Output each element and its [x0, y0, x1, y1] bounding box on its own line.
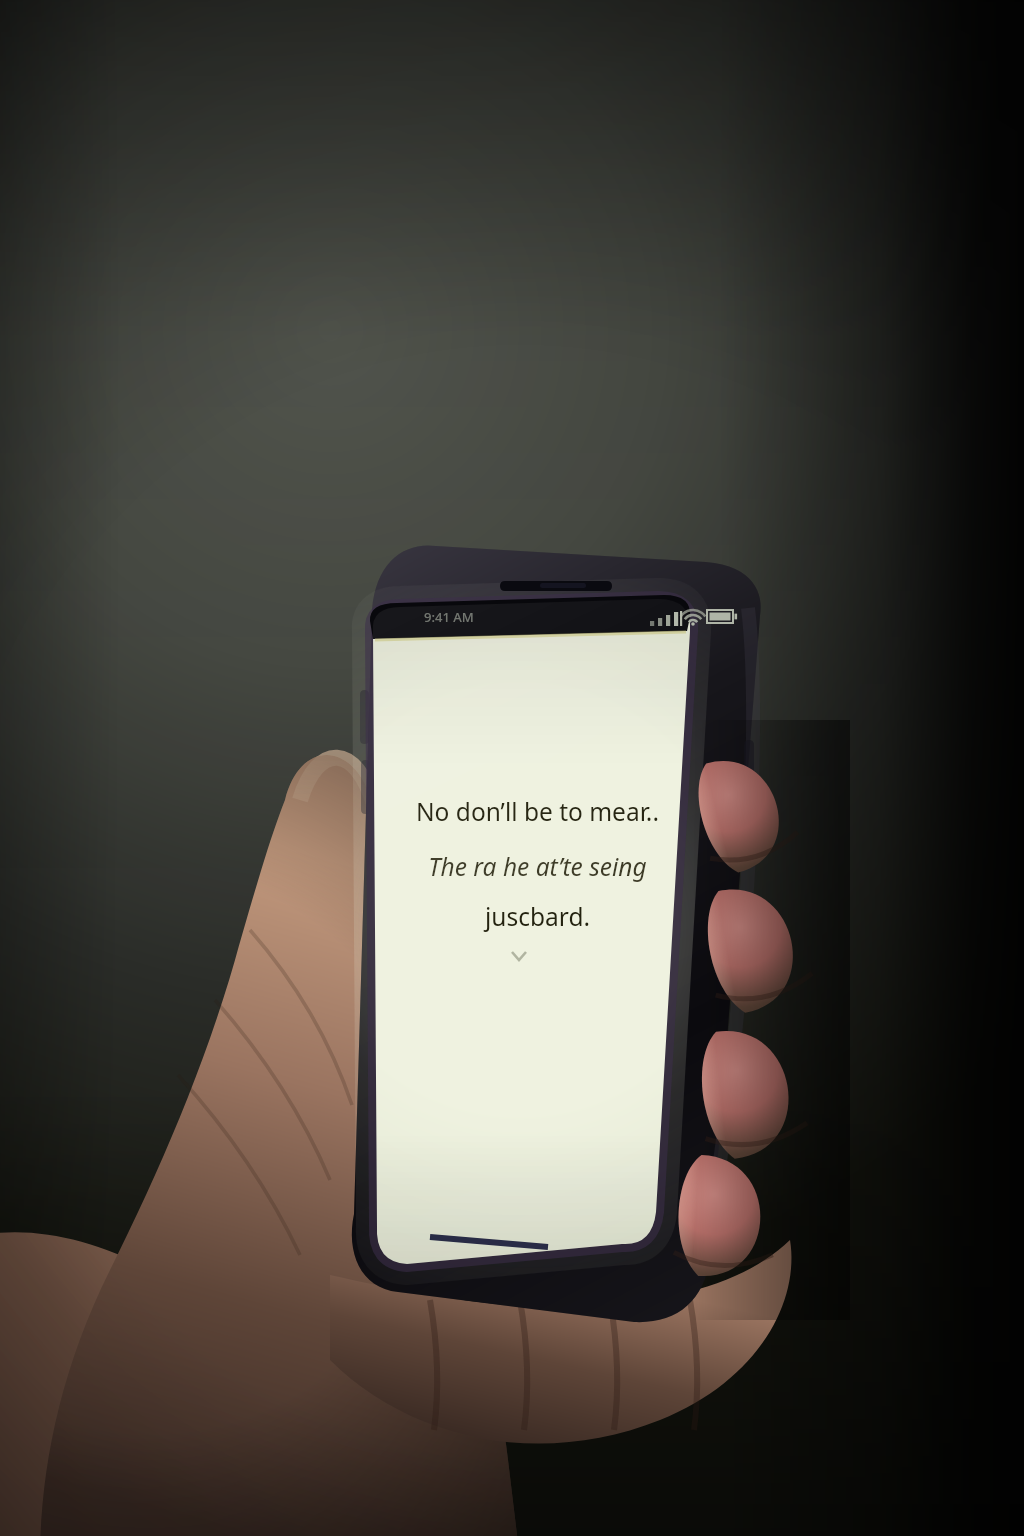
- button[interactable]: Photo of a hand holding a phone showing …: [0, 0, 1024, 1536]
